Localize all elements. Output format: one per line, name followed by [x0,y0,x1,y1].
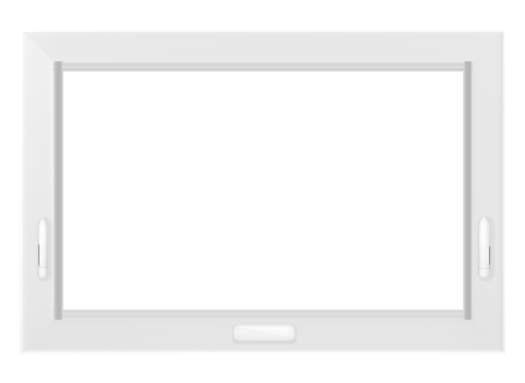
other: White vinyl awning window [0,0,525,383]
